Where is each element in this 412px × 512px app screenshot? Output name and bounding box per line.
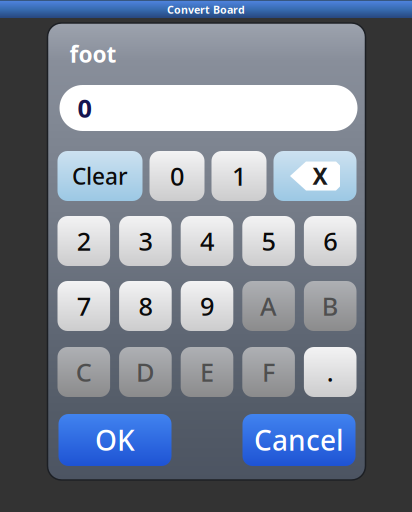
staticText: 0 <box>77 91 91 125</box>
button[interactable]: OK <box>58 414 171 466</box>
button[interactable]: D <box>119 347 172 397</box>
staticText: 7 <box>77 289 91 323</box>
staticText: Cancel <box>254 421 344 459</box>
button[interactable]: B <box>304 281 356 331</box>
staticText: 3 <box>138 224 152 258</box>
staticText: 5 <box>262 224 276 258</box>
staticText: 6 <box>323 224 337 258</box>
button[interactable]: 5 <box>242 216 295 266</box>
staticText: X <box>312 161 327 191</box>
button[interactable]: 8 <box>119 281 172 331</box>
staticText: 9 <box>200 289 214 323</box>
staticText: . <box>327 355 334 389</box>
staticText: E <box>200 355 214 389</box>
button[interactable]: 9 <box>181 281 233 331</box>
button[interactable]: 4 <box>181 216 233 266</box>
staticText: 4 <box>200 224 214 258</box>
staticText: foot <box>69 39 116 69</box>
button[interactable]: C <box>57 347 110 397</box>
button[interactable]: Clear <box>57 151 142 201</box>
staticText: 1 <box>232 159 246 193</box>
button[interactable]: 7 <box>57 281 110 331</box>
button[interactable]: A <box>242 281 295 331</box>
staticText: OK <box>95 421 135 459</box>
staticText: A <box>260 289 277 323</box>
button[interactable]: Cancel <box>242 414 355 466</box>
staticText: C <box>76 355 92 389</box>
button[interactable]: 3 <box>119 216 172 266</box>
button[interactable]: 6 <box>304 216 356 266</box>
button[interactable]: Backspace <box>273 151 356 201</box>
button[interactable]: E <box>181 347 233 397</box>
staticText: 8 <box>138 289 152 323</box>
button[interactable]: 1 <box>211 151 266 201</box>
staticText: 2 <box>77 224 91 258</box>
staticText: Clear <box>72 161 128 191</box>
staticText: D <box>136 355 155 389</box>
staticText: Convert Board <box>167 2 245 17</box>
button[interactable]: . <box>304 347 356 397</box>
staticText: F <box>262 355 275 389</box>
button[interactable]: 2 <box>57 216 110 266</box>
button[interactable]: F <box>242 347 295 397</box>
staticText: 0 <box>170 159 184 193</box>
staticText: B <box>322 289 339 323</box>
button[interactable]: 0 <box>149 151 204 201</box>
